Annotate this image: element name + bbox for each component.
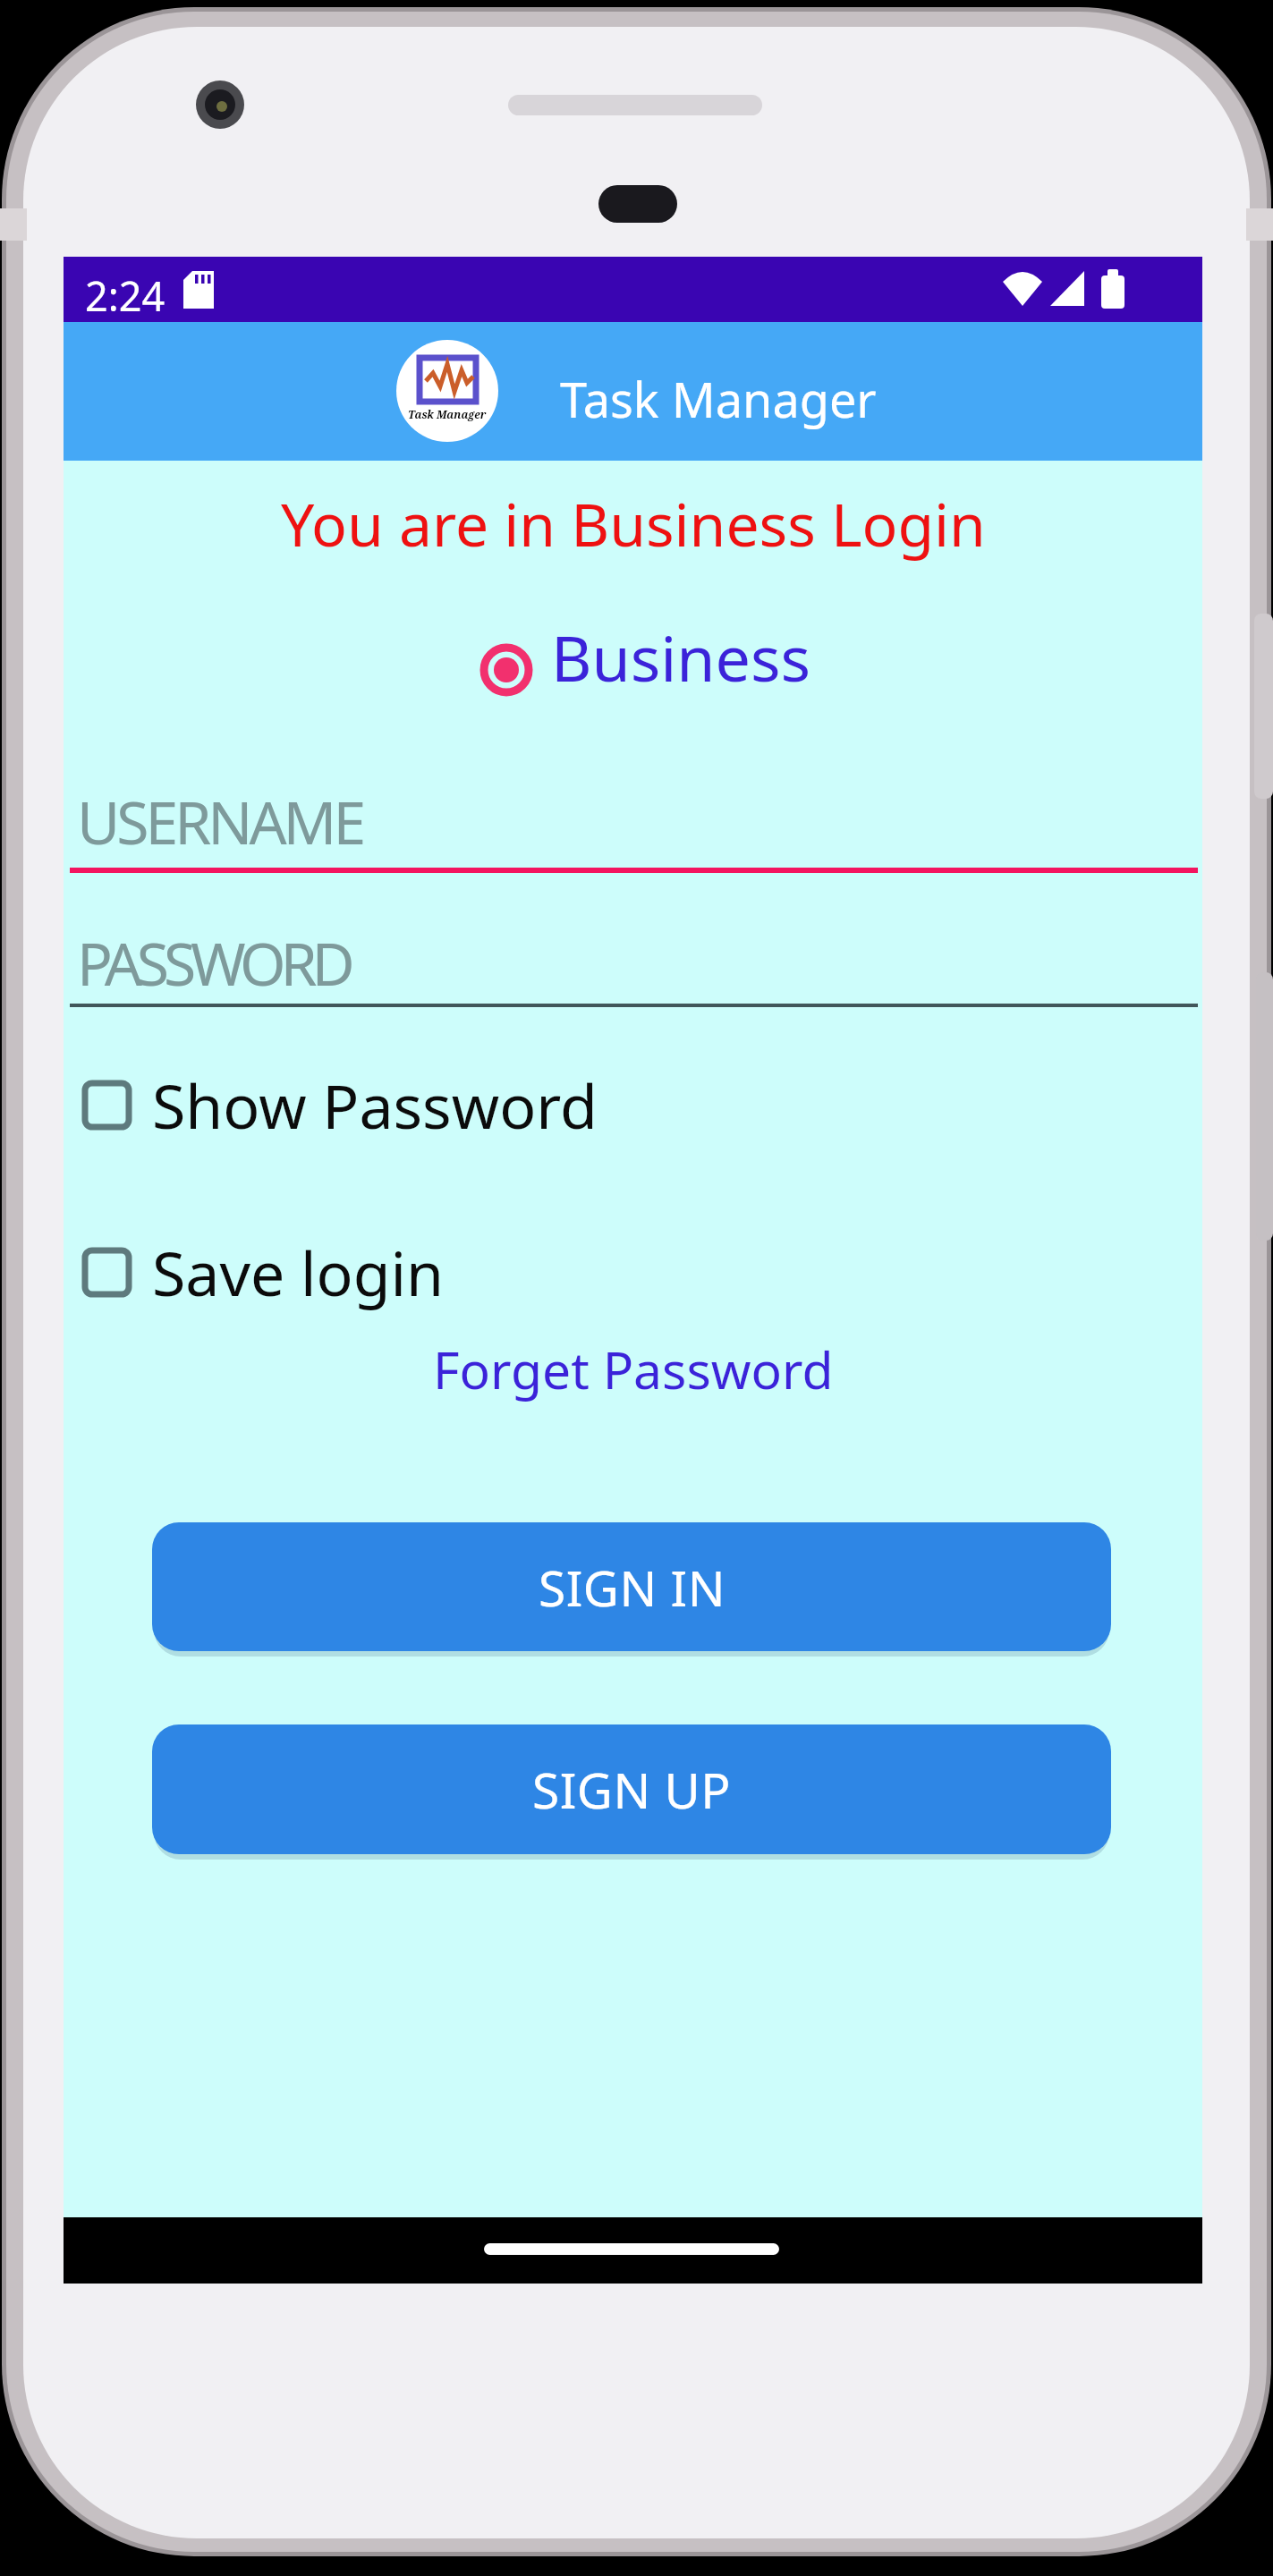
staticText: USERNAME xyxy=(77,781,363,861)
staticText: Save login xyxy=(152,1231,445,1314)
staticText: Task Manager xyxy=(408,407,487,421)
staticText: PASSWORD xyxy=(77,922,350,1003)
staticText: 2:24 xyxy=(85,268,165,323)
staticText: SIGN UP xyxy=(532,1756,731,1823)
staticText: Show Password xyxy=(152,1063,598,1147)
button[interactable]: Forget Password xyxy=(433,1335,834,1404)
button[interactable]: PASSWORD xyxy=(70,919,1198,1004)
button[interactable]: SIGN UP xyxy=(152,1724,1111,1854)
button[interactable]: USERNAME xyxy=(70,775,1198,868)
staticText: Business xyxy=(551,614,811,699)
staticText: Task Manager xyxy=(560,366,877,432)
button[interactable]: SIGN IN xyxy=(152,1522,1111,1651)
staticText: You are in Business Login xyxy=(281,483,986,563)
button[interactable]: Show Password xyxy=(82,1063,598,1147)
staticText: Forget Password xyxy=(433,1335,834,1404)
button[interactable]: Business xyxy=(479,614,811,699)
button[interactable]: Save login xyxy=(82,1231,445,1314)
staticText: SIGN IN xyxy=(539,1554,726,1621)
